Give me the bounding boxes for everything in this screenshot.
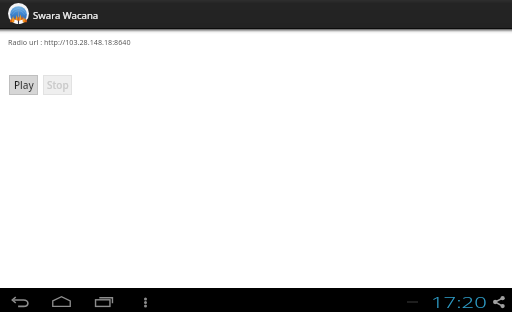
- button[interactable]: Back: [12, 297, 29, 307]
- staticText: Play: [14, 78, 34, 92]
- button[interactable]: Home: [52, 296, 71, 307]
- button[interactable]: More options: [144, 298, 147, 307]
- button[interactable]: Recent apps: [95, 297, 113, 307]
- staticText: Radio url : http://103.28.148.18:8640: [8, 37, 131, 47]
- staticText: Stop: [47, 78, 69, 92]
- button[interactable]: Stop: [43, 75, 72, 95]
- staticText: 17:20: [431, 292, 487, 312]
- button[interactable]: Play: [9, 75, 38, 95]
- staticText: Swara Wacana: [33, 9, 99, 22]
- button[interactable]: Share: [493, 296, 505, 308]
